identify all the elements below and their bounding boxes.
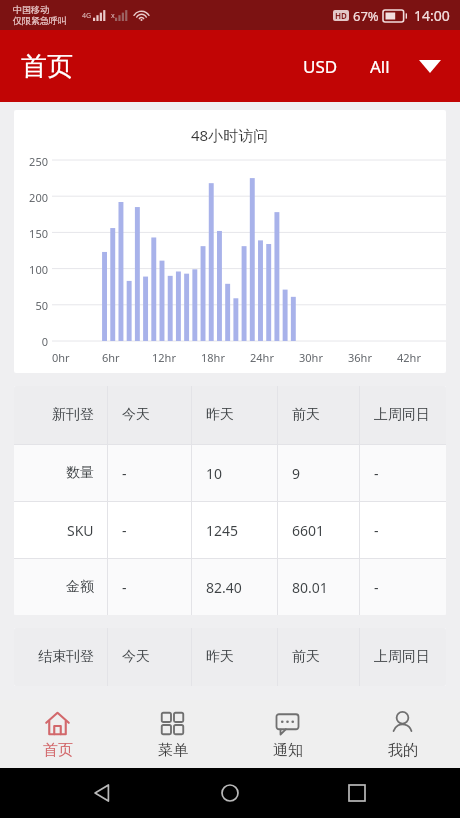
button[interactable]: USD (293, 45, 348, 88)
staticText: 上周同日 (374, 406, 430, 424)
button[interactable]: 通知 (230, 700, 345, 768)
staticText: 中国移动 (13, 4, 49, 15)
staticText: - (122, 521, 127, 540)
button[interactable]: Filter dropdown (408, 44, 452, 88)
staticText: 48小时访问 (191, 125, 269, 145)
staticText: SKU (67, 521, 94, 540)
staticText: 今天 (122, 648, 150, 666)
staticText: 前天 (292, 406, 320, 424)
staticText: 4G (82, 11, 92, 21)
staticText: 0 (41, 334, 48, 347)
button[interactable]: All (360, 45, 400, 88)
staticText: - (374, 578, 379, 597)
button[interactable]: SKU (14, 502, 446, 558)
staticText: 100 (29, 262, 48, 275)
staticText: - (374, 521, 379, 540)
staticText: USD (303, 55, 338, 78)
button[interactable]: 数量 (14, 445, 446, 501)
staticText: 6hr (102, 350, 120, 365)
button[interactable]: 菜单 (115, 700, 230, 768)
staticText: 200 (29, 190, 48, 203)
staticText: 50 (35, 298, 48, 311)
staticText: 30hr (299, 350, 323, 365)
button[interactable]: Back (79, 769, 127, 817)
staticText: 1245 (206, 521, 239, 540)
staticText: 数量 (66, 464, 94, 482)
staticText: 6601 (292, 521, 325, 540)
staticText: 首页 (21, 50, 73, 83)
staticText: 菜单 (158, 741, 188, 760)
staticText: 12hr (152, 350, 176, 365)
staticText: 结束刊登 (38, 648, 94, 666)
staticText: x (111, 11, 115, 21)
button[interactable]: Home (206, 769, 254, 817)
staticText: 67% (353, 7, 379, 25)
staticText: 24hr (250, 350, 274, 365)
staticText: 新刊登 (52, 406, 94, 424)
button[interactable]: 我的 (345, 700, 460, 768)
staticText: 80.01 (292, 578, 328, 597)
staticText: 9 (292, 464, 301, 483)
staticText: 18hr (201, 350, 225, 365)
staticText: - (122, 464, 127, 483)
staticText: 今天 (122, 406, 150, 424)
staticText: - (122, 578, 127, 597)
staticText: 昨天 (206, 406, 234, 424)
staticText: 0hr (52, 350, 70, 365)
staticText: 上周同日 (374, 648, 430, 666)
staticText: 仅限紧急呼叫 (13, 15, 67, 26)
staticText: 14:00 (414, 6, 450, 25)
staticText: 通知 (273, 741, 303, 760)
staticText: 42hr (397, 350, 421, 365)
staticText: 36hr (348, 350, 372, 365)
staticText: 150 (29, 226, 48, 239)
staticText: 10 (206, 464, 223, 483)
staticText: All (370, 55, 390, 78)
staticText: 前天 (292, 648, 320, 666)
button[interactable]: 金额 (14, 559, 446, 615)
staticText: 250 (29, 154, 48, 167)
staticText: 金额 (66, 578, 94, 596)
staticText: 82.40 (206, 578, 242, 597)
button[interactable]: Recent apps (333, 769, 381, 817)
staticText: - (374, 464, 379, 483)
button[interactable]: 首页 (0, 700, 115, 768)
staticText: 昨天 (206, 648, 234, 666)
staticText: 我的 (388, 741, 418, 760)
staticText: 首页 (43, 741, 73, 760)
staticText: HD (335, 10, 347, 21)
